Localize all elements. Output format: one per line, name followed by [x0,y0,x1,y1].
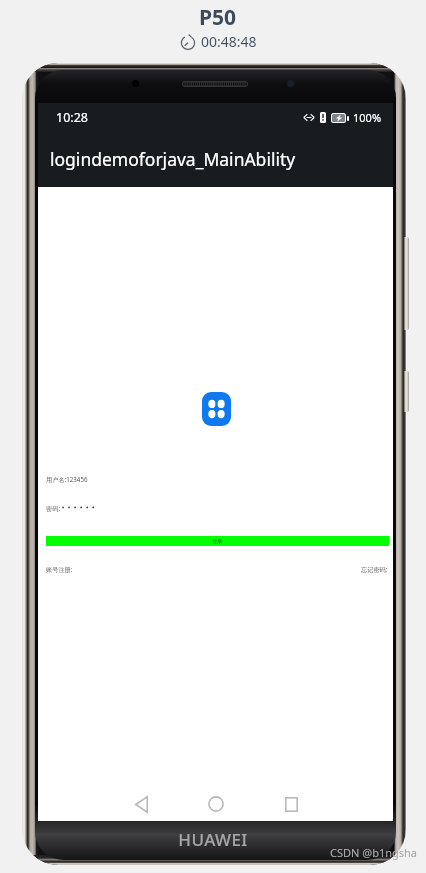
staticText: logindemoforjava_MainAbility [50,147,296,171]
staticText: CSDN @b1ngsha [330,845,417,860]
button[interactable]: Home [196,784,236,824]
button[interactable]: Recents [271,784,311,824]
button[interactable]: 登录 [46,536,389,546]
button[interactable]: 账号注册: [46,565,73,573]
staticText: 密码: [46,504,61,512]
staticText: 00:48:48 [201,32,257,51]
button[interactable]: Back [121,784,161,824]
staticText: HUAWEI [178,828,248,851]
staticText: 用户名:123456 [46,475,88,483]
staticText: P50 [199,3,237,32]
staticText: 10:28 [56,109,88,126]
button[interactable]: 忘记密码: [361,565,388,573]
staticText: 100% [353,110,382,125]
staticText: 登录 [212,538,223,545]
button[interactable]: App icon [202,392,231,426]
